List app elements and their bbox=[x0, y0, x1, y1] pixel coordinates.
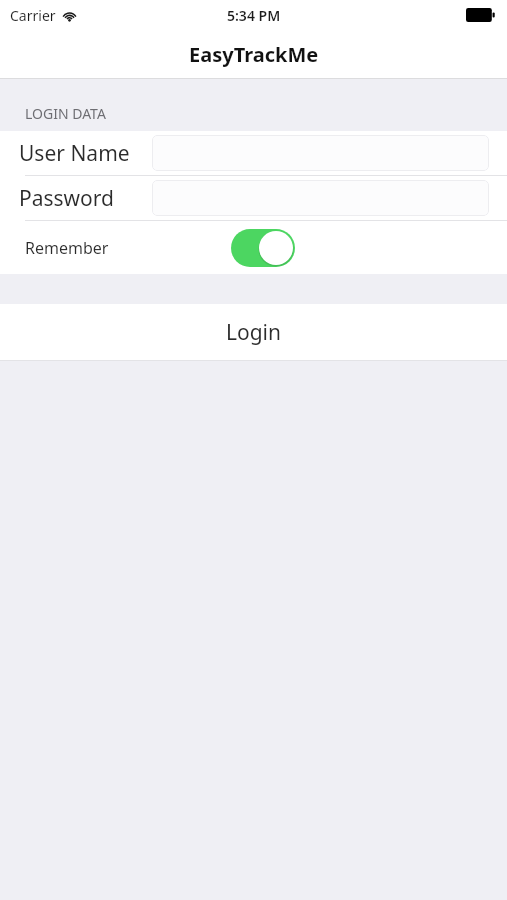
staticText: LOGIN DATA bbox=[25, 104, 106, 123]
staticText: Remember bbox=[25, 237, 109, 259]
staticText: Password bbox=[19, 184, 114, 213]
staticText: 5:34 PM bbox=[227, 6, 281, 25]
staticText: User Name bbox=[19, 139, 130, 168]
button[interactable]: Login bbox=[0, 304, 507, 360]
staticText: EasyTrackMe bbox=[189, 41, 319, 68]
staticText: Login bbox=[226, 318, 282, 347]
button[interactable]: Remember me toggle, on bbox=[231, 229, 295, 267]
button[interactable]: Password bbox=[0, 176, 507, 220]
staticText: Carrier bbox=[10, 6, 56, 25]
button[interactable]: User Name bbox=[0, 131, 507, 175]
button[interactable]: Remember bbox=[0, 221, 507, 274]
